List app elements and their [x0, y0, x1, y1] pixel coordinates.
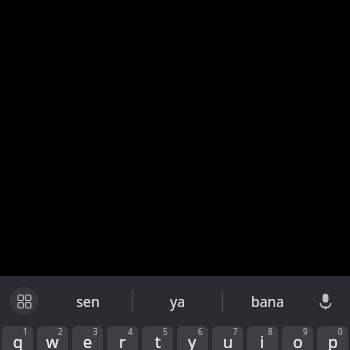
staticText: w [46, 331, 59, 350]
button[interactable]: Voice input [308, 284, 342, 318]
staticText: q [13, 331, 23, 350]
button[interactable]: 5 [142, 326, 173, 350]
button[interactable]: 4 [107, 326, 138, 350]
staticText: sen [76, 292, 100, 311]
button[interactable]: sen [44, 276, 132, 326]
staticText: r [119, 331, 126, 350]
staticText: t [155, 331, 161, 350]
staticText: 1 [23, 326, 28, 337]
button[interactable]: 0 [317, 326, 348, 350]
staticText: e [83, 331, 93, 350]
button[interactable]: 2 [37, 326, 68, 350]
button[interactable]: 9 [282, 326, 313, 350]
button[interactable]: ya [133, 276, 222, 326]
staticText: u [223, 331, 233, 350]
staticText: y [188, 331, 197, 350]
button[interactable]: bana [223, 276, 312, 326]
button[interactable]: 8 [247, 326, 278, 350]
button[interactable]: 3 [72, 326, 103, 350]
staticText: o [293, 331, 303, 350]
button[interactable]: 7 [212, 326, 243, 350]
staticText: p [328, 331, 338, 350]
staticText: 9 [303, 326, 308, 337]
staticText: 3 [93, 326, 98, 337]
staticText: 0 [338, 326, 343, 337]
staticText: ya [170, 292, 185, 311]
button[interactable]: 1 [2, 326, 33, 350]
button[interactable]: 6 [177, 326, 208, 350]
staticText: 4 [128, 326, 133, 337]
staticText: 8 [268, 326, 273, 337]
staticText: 2 [58, 326, 63, 337]
staticText: bana [251, 292, 284, 311]
staticText: 7 [233, 326, 238, 337]
staticText: 5 [163, 326, 168, 337]
staticText: 6 [198, 326, 203, 337]
button[interactable]: Open keyboard tools [10, 287, 38, 315]
staticText: i [260, 331, 265, 350]
